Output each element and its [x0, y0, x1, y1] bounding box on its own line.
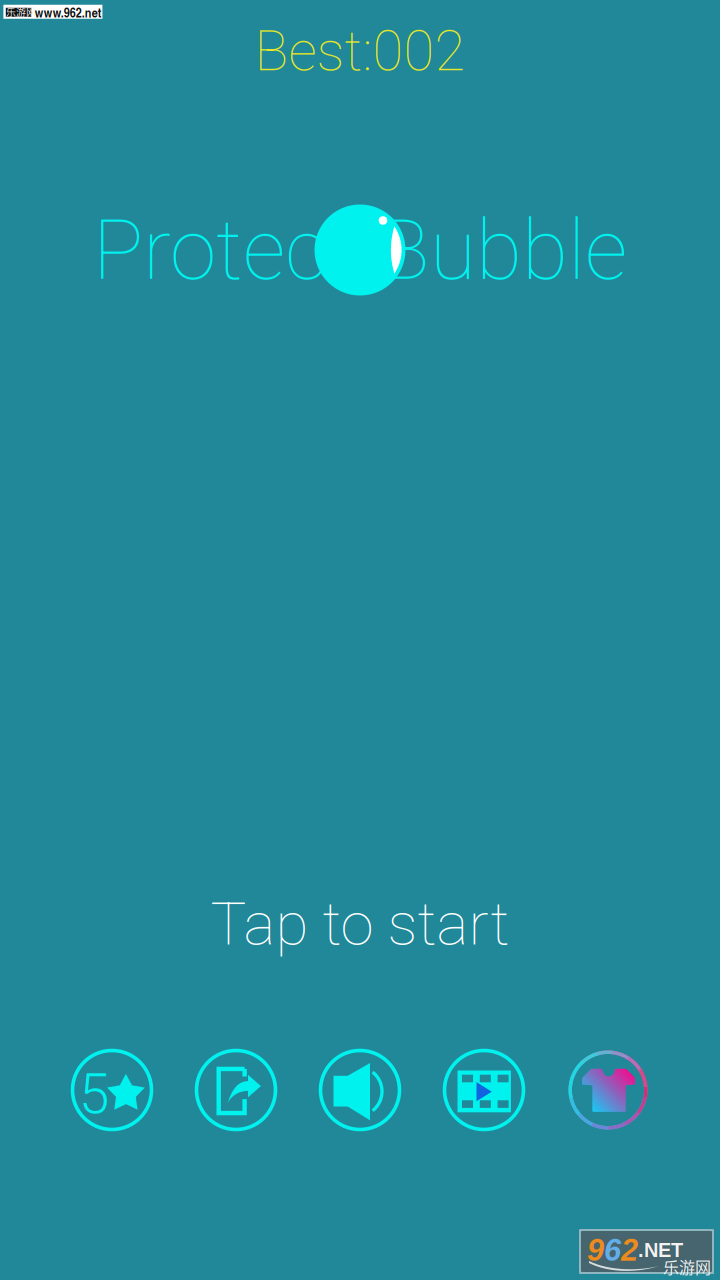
staticText: 5 [79, 1062, 109, 1127]
staticText: .NET [638, 1239, 683, 1261]
button[interactable]: Skins [568, 1050, 647, 1129]
staticText: www.962.net [35, 3, 102, 22]
staticText: 9 [587, 1233, 604, 1267]
button[interactable]: Share [196, 1050, 275, 1129]
staticText: 乐游网 [663, 1255, 711, 1278]
button[interactable]: Sound [320, 1050, 399, 1129]
staticText: Bubble [379, 201, 627, 299]
staticText: 6 [604, 1233, 621, 1267]
staticText: Protect [93, 201, 355, 299]
button[interactable]: Rate 5 stars [72, 1050, 151, 1129]
button[interactable]: Watch video [444, 1050, 523, 1129]
staticText: 2 [621, 1233, 638, 1267]
staticText: Best:002 [254, 18, 465, 84]
staticText: Tap to start [210, 889, 509, 959]
staticText: 乐游网 [6, 5, 36, 19]
